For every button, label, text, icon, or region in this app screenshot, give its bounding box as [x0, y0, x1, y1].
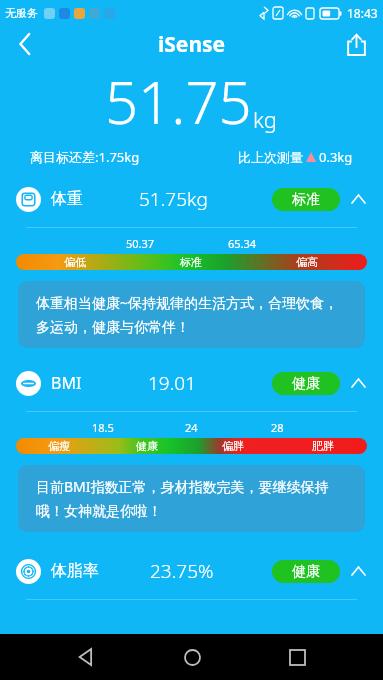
staticText: 健康	[292, 563, 320, 581]
button[interactable]: Back	[8, 27, 42, 61]
button[interactable]: BMI	[0, 364, 383, 402]
button[interactable]: Back	[66, 637, 106, 677]
staticText: 51.75kg	[139, 186, 208, 212]
staticText: 体脂率	[51, 561, 99, 581]
staticText: iSense	[158, 30, 226, 59]
staticText: 24	[185, 420, 198, 435]
staticText: 无服务	[5, 6, 38, 20]
staticText: 标准	[180, 255, 202, 269]
staticText: 体重	[51, 189, 83, 209]
staticText: 28	[271, 420, 284, 435]
button[interactable]: 目前BMI指数正常，身材指数完美，要继续保持哦！女神就是你啦！	[18, 465, 365, 532]
button[interactable]: 标准	[272, 188, 340, 211]
staticText: 偏瘦	[48, 439, 70, 453]
button[interactable]: Collapse	[349, 562, 367, 580]
button[interactable]: Share	[339, 27, 373, 61]
staticText: 0.3kg	[319, 148, 353, 166]
staticText: 65.34	[228, 236, 257, 251]
button[interactable]: 健康	[272, 560, 340, 583]
staticText: 健康	[292, 375, 320, 393]
button[interactable]: Recents	[277, 637, 317, 677]
staticText: 比上次测量	[238, 149, 303, 165]
staticText: kg	[253, 104, 278, 134]
staticText: 50.37	[126, 236, 155, 251]
button[interactable]: 健康	[272, 372, 340, 395]
button[interactable]: Collapse	[349, 374, 367, 392]
staticText: 18.5	[92, 420, 114, 435]
staticText: 目前BMI指数正常，身材指数完美，要继续保持哦！女神就是你啦！	[36, 477, 347, 520]
staticText: 离目标还差:1.75kg	[30, 148, 140, 166]
button[interactable]: 体重	[0, 180, 383, 218]
staticText: 偏低	[64, 255, 86, 269]
staticText: 体重相当健康~保持规律的生活方式，合理饮食，多运动，健康与你常伴！	[36, 293, 347, 336]
button[interactable]: 体脂率	[0, 552, 383, 590]
staticText: 18:43	[347, 5, 378, 21]
button[interactable]: Home	[172, 637, 212, 677]
staticText: 偏高	[296, 255, 318, 269]
staticText: 23.75%	[150, 558, 214, 584]
button[interactable]: Collapse	[349, 190, 367, 208]
staticText: 肥胖	[312, 439, 334, 453]
button[interactable]: 体重相当健康~保持规律的生活方式，合理饮食，多运动，健康与你常伴！	[18, 281, 365, 348]
staticText: 51.75	[105, 62, 252, 141]
staticText: BMI	[51, 372, 82, 394]
staticText: 偏胖	[222, 439, 244, 453]
staticText: 健康	[136, 439, 158, 453]
staticText: 19.01	[148, 370, 197, 396]
staticText: 标准	[292, 191, 320, 209]
